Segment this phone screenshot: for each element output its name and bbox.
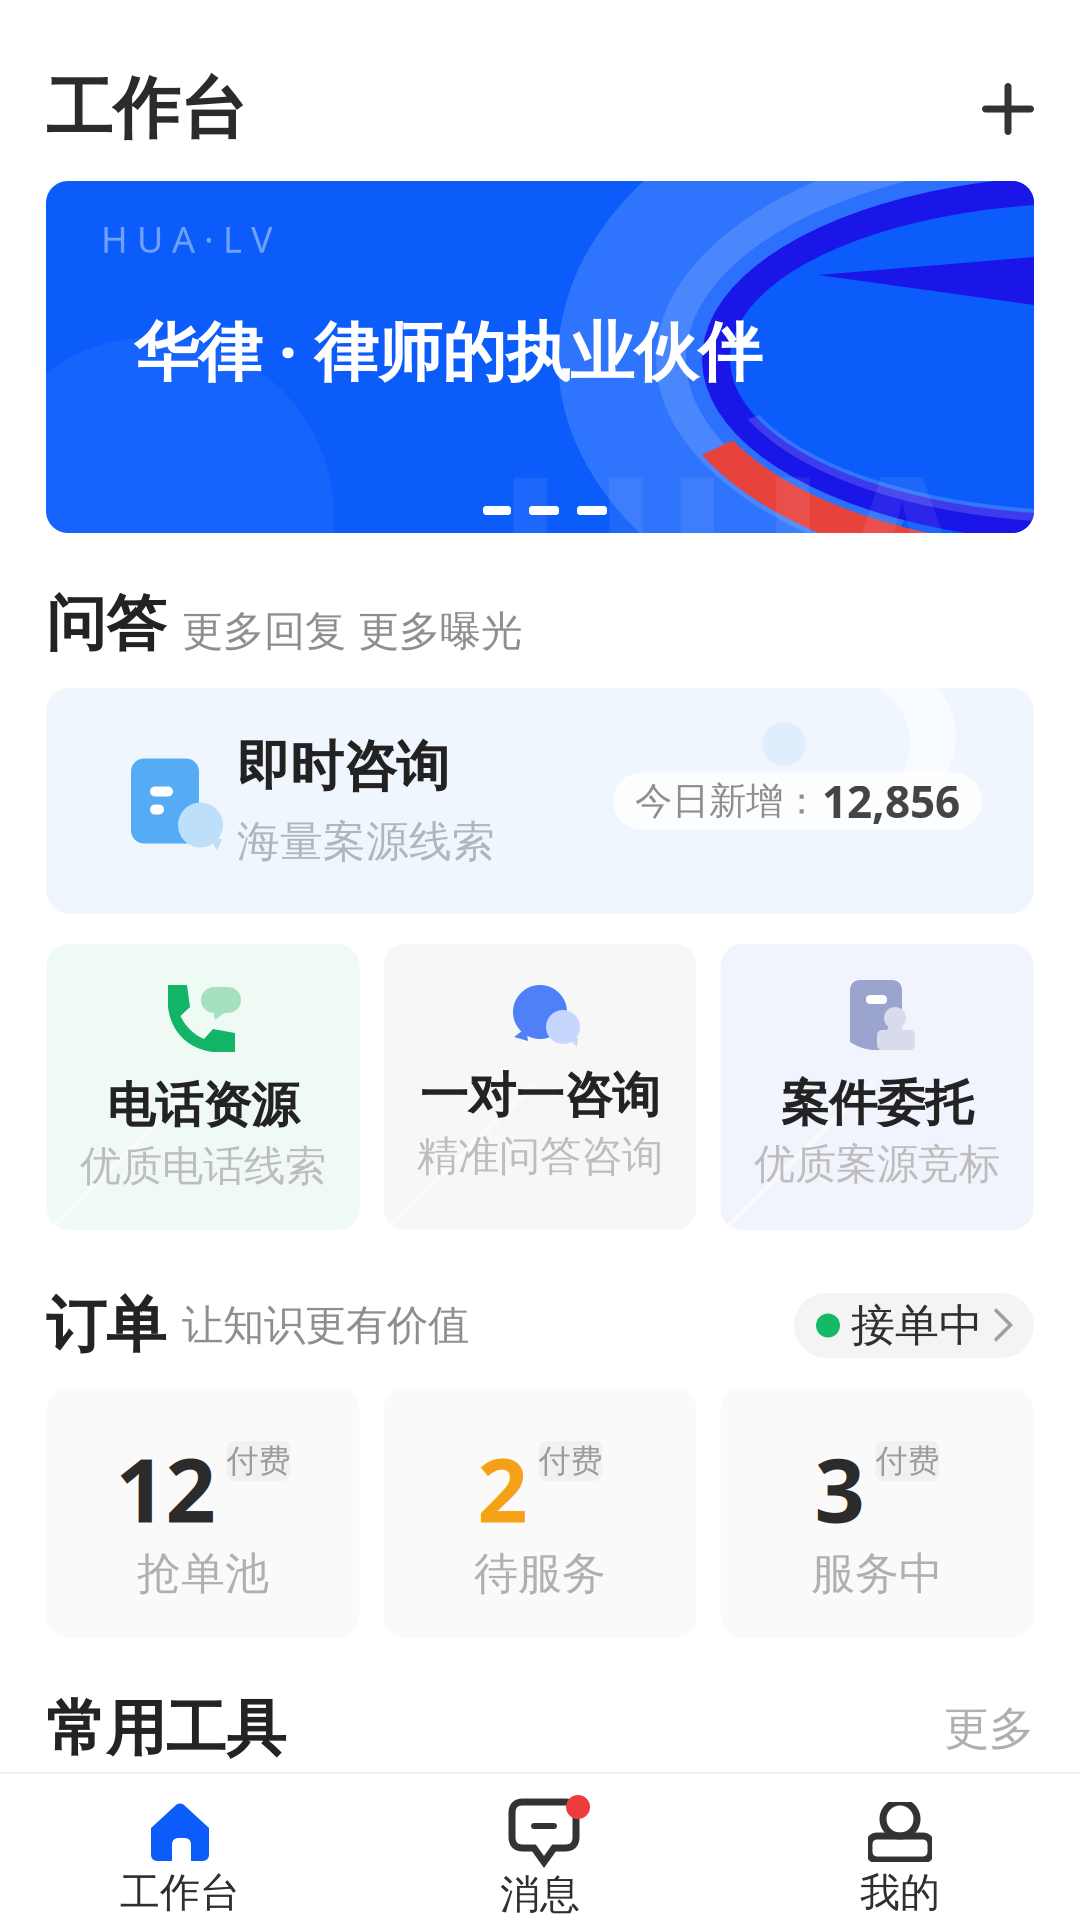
staticText: 更多回复 更多曝光 — [182, 606, 522, 657]
staticText: 接单中 — [851, 1298, 983, 1352]
staticText: 优质电话线索 — [80, 1141, 326, 1192]
button[interactable]: 接单中 — [794, 1293, 1034, 1358]
button[interactable]: 电话资源 — [46, 944, 359, 1230]
staticText: 问答 — [46, 587, 166, 661]
staticText: 12,856 — [822, 772, 960, 830]
staticText: 付费 — [226, 1441, 290, 1481]
staticText: 2 — [477, 1430, 527, 1547]
staticText: 待服务 — [474, 1547, 606, 1601]
button[interactable]: 一对一咨询 — [383, 944, 696, 1230]
staticText: 服务中 — [811, 1547, 943, 1601]
button[interactable]: 我的 — [720, 1802, 1080, 1917]
staticText: 工作台 — [120, 1868, 240, 1917]
button[interactable]: Add — [972, 73, 1044, 145]
staticText: 精准问答咨询 — [417, 1131, 663, 1182]
button[interactable]: 2 — [383, 1388, 696, 1638]
staticText: 一对一咨询 — [420, 1066, 660, 1125]
button[interactable]: 12 — [46, 1388, 359, 1638]
button[interactable]: 更多 — [944, 1701, 1034, 1757]
button[interactable]: 工作台 — [0, 1802, 360, 1917]
button[interactable]: 即时咨询 — [46, 688, 1034, 914]
staticText: HUA LV — [494, 403, 1080, 695]
staticText: 案件委托 — [781, 1074, 973, 1133]
staticText: 今日新增： — [635, 778, 820, 824]
staticText: 抢单池 — [137, 1547, 269, 1601]
staticText: 即时咨询 — [237, 734, 449, 799]
button[interactable]: 消息 — [360, 1800, 720, 1919]
staticText: 工作台 — [46, 68, 247, 150]
staticText: 付费 — [538, 1441, 602, 1481]
staticText: 华律 · 律师的执业伙伴 — [134, 308, 762, 393]
staticText: 电话资源 — [107, 1076, 299, 1135]
staticText: 优质案源竞标 — [754, 1139, 1000, 1190]
staticText: 订单 — [46, 1289, 166, 1362]
staticText: H U A · L V — [101, 215, 273, 263]
staticText: 常用工具 — [46, 1692, 286, 1766]
staticText: 我的 — [860, 1868, 940, 1917]
staticText: 3 — [814, 1430, 864, 1547]
button[interactable]: 案件委托 — [720, 944, 1033, 1230]
staticText: 更多 — [944, 1701, 1034, 1757]
button[interactable]: 3 — [720, 1388, 1033, 1638]
staticText: 消息 — [500, 1870, 580, 1919]
staticText: 12 — [115, 1430, 215, 1547]
staticText: 付费 — [875, 1441, 939, 1481]
staticText: 让知识更有价值 — [182, 1300, 469, 1351]
staticText: 海量案源线索 — [237, 816, 495, 868]
